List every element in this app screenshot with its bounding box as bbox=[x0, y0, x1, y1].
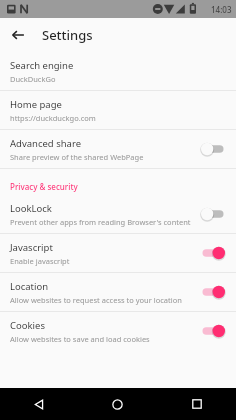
staticText: Settings bbox=[42, 26, 93, 44]
button[interactable]: Toggle on bbox=[198, 244, 228, 262]
button[interactable]: LookLock bbox=[0, 195, 236, 233]
staticText: Advanced share bbox=[10, 137, 82, 150]
button[interactable]: Recent apps bbox=[157, 388, 236, 420]
staticText: Allow websites to request access to your… bbox=[10, 295, 182, 305]
staticText: Home page bbox=[10, 98, 62, 111]
button[interactable]: Toggle off bbox=[198, 140, 228, 158]
staticText: https://duckduckgo.com bbox=[10, 113, 96, 123]
button[interactable]: Back bbox=[6, 23, 30, 47]
staticText: 14:03 bbox=[211, 4, 232, 15]
button[interactable]: Toggle on bbox=[198, 322, 228, 340]
staticText: Cookies bbox=[10, 319, 45, 332]
button[interactable]: Cookies bbox=[0, 312, 236, 350]
button[interactable]: Back bbox=[0, 388, 78, 420]
button[interactable]: Javascript bbox=[0, 234, 236, 272]
staticText: Enable javascript bbox=[10, 256, 70, 266]
staticText: Privacy & security bbox=[10, 181, 78, 192]
staticText: Allow websites to save and load cookies bbox=[10, 334, 150, 344]
button[interactable]: Toggle off bbox=[198, 205, 228, 223]
button[interactable]: Search engine bbox=[0, 52, 236, 90]
staticText: Share preview of the shared WebPage bbox=[10, 152, 144, 162]
staticText: Prevent other apps from reading Browser'… bbox=[10, 217, 191, 227]
staticText: LookLock bbox=[10, 202, 52, 215]
button[interactable]: Location bbox=[0, 273, 236, 311]
staticText: Search engine bbox=[10, 59, 74, 72]
staticText: DuckDuckGo bbox=[10, 74, 56, 84]
button[interactable]: Home page bbox=[0, 91, 236, 129]
button[interactable]: Toggle on bbox=[198, 283, 228, 301]
button[interactable]: Home bbox=[78, 388, 157, 420]
staticText: Javascript bbox=[10, 241, 53, 254]
button[interactable]: Advanced share bbox=[0, 130, 236, 168]
staticText: Location bbox=[10, 280, 49, 293]
